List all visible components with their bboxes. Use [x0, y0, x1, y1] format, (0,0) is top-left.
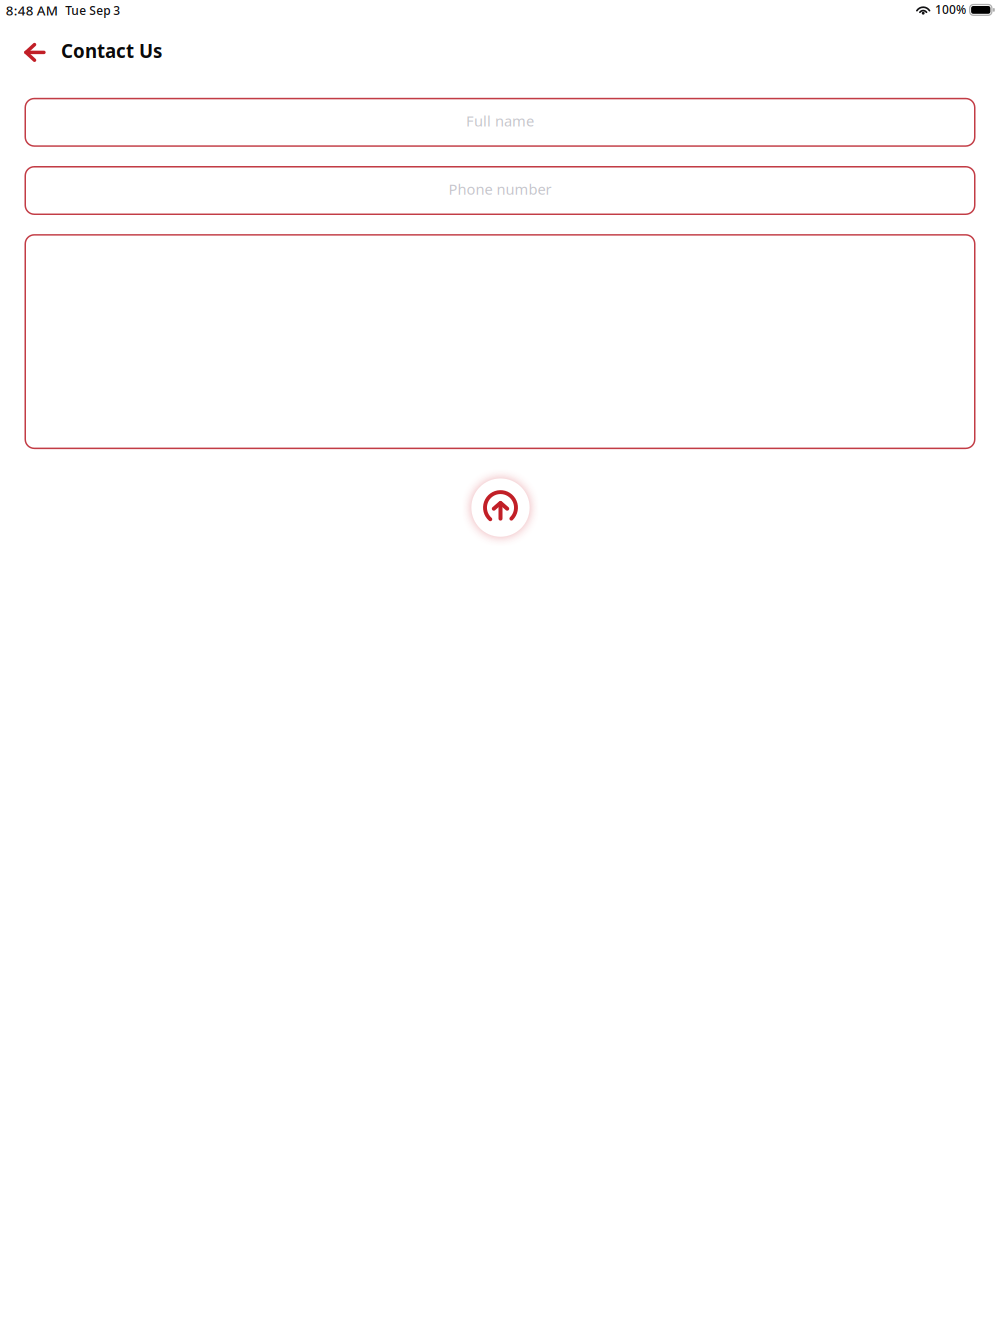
- button[interactable]: Submit: [458, 466, 542, 550]
- staticText: Phone number: [448, 179, 551, 199]
- staticText: 8:48 AM: [6, 1, 58, 19]
- button[interactable]: Back: [13, 30, 57, 74]
- button[interactable]: Phone number: [24, 166, 975, 215]
- staticText: Tue Sep 3: [65, 2, 120, 18]
- staticText: 100%: [935, 1, 966, 17]
- button[interactable]: Full name: [24, 98, 975, 147]
- button[interactable]: Message: [24, 234, 975, 449]
- staticText: Full name: [466, 111, 534, 131]
- staticText: Contact Us: [61, 38, 162, 63]
